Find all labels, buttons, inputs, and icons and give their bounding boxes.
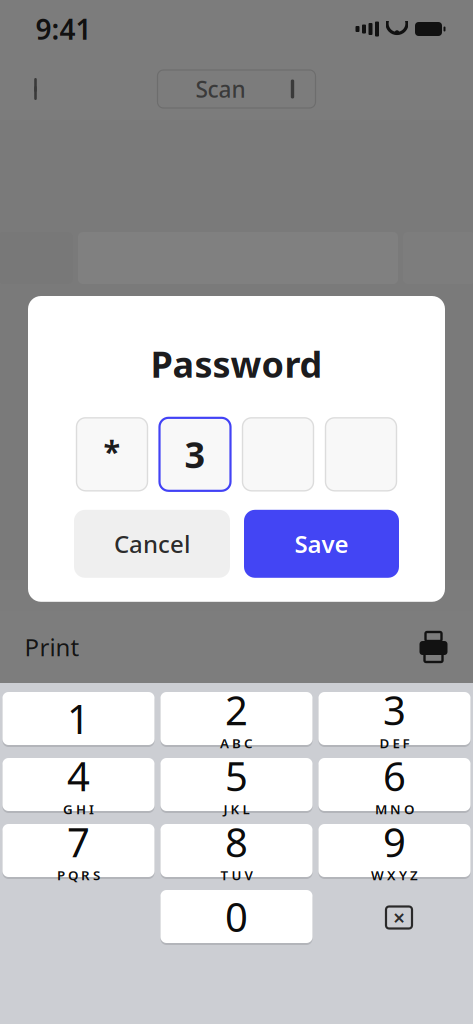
button[interactable]: 1 (2, 692, 154, 747)
staticText: 3 (383, 683, 406, 736)
staticText: 0 (225, 890, 248, 943)
button[interactable]: 9 (318, 824, 470, 879)
staticText: 9 (383, 815, 406, 868)
staticText: 7 (67, 815, 90, 868)
button[interactable]: * (76, 418, 147, 491)
button[interactable]: Print (0, 611, 473, 683)
button[interactable]: 6 (318, 758, 470, 813)
staticText: Password (150, 340, 322, 388)
staticText: J K L (223, 800, 249, 818)
staticText: M N O (375, 800, 414, 818)
staticText: Cancel (114, 528, 190, 560)
staticText: T U V (220, 866, 252, 884)
staticText: G H I (63, 800, 94, 818)
button[interactable]: 3 (318, 692, 470, 747)
button[interactable]: Cancel (74, 510, 230, 578)
staticText: Print (24, 631, 79, 663)
staticText: 3 (184, 430, 205, 478)
button[interactable]: Save (244, 510, 399, 578)
button[interactable]: 5 (160, 758, 312, 813)
button[interactable]: Empty digit (242, 418, 313, 491)
staticText: Save (294, 528, 348, 560)
button[interactable]: Delete (318, 890, 470, 945)
staticText: 2 (225, 683, 248, 736)
staticText: D E F (379, 734, 409, 752)
button[interactable]: 8 (160, 824, 312, 879)
staticText: Scan (195, 74, 245, 104)
staticText: 5 (225, 749, 248, 802)
staticText: 1 (67, 692, 90, 745)
staticText: W X Y Z (371, 866, 418, 884)
staticText: * (103, 430, 120, 471)
staticText: 4 (67, 749, 90, 802)
staticText: 8 (225, 815, 248, 868)
staticText: 6 (383, 749, 406, 802)
staticText: A B C (220, 734, 253, 752)
button[interactable]: Back (15, 67, 59, 111)
button[interactable]: 3 (159, 418, 230, 491)
button[interactable]: Empty digit (325, 418, 396, 491)
button[interactable]: 7 (2, 824, 154, 879)
button[interactable]: 4 (2, 758, 154, 813)
staticText: 9:41 (35, 10, 91, 48)
button[interactable]: 0 (160, 890, 312, 945)
button[interactable]: 2 (160, 692, 312, 747)
staticText: P Q R S (57, 866, 100, 884)
staticText: × (393, 903, 405, 932)
